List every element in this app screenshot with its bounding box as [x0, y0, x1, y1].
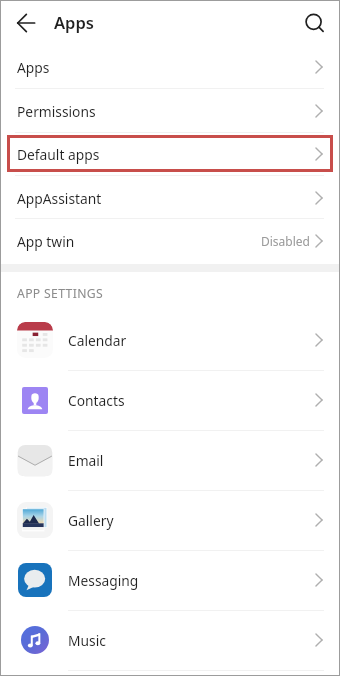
staticText: AppAssistant	[17, 189, 102, 208]
button[interactable]: Calendar	[0, 310, 340, 370]
staticText: APP SETTINGS	[17, 285, 104, 302]
staticText: Contacts	[68, 391, 125, 410]
staticText: Default apps	[17, 145, 100, 164]
button[interactable]: Apps	[0, 45, 340, 89]
button[interactable]: App twin	[0, 219, 340, 263]
staticText: Messaging	[68, 571, 139, 590]
button[interactable]: Permissions	[0, 89, 340, 133]
staticText: Calendar	[68, 331, 127, 350]
staticText: Email	[68, 451, 104, 470]
button[interactable]: Messaging	[0, 550, 340, 610]
staticText: Disabled	[261, 233, 310, 249]
button[interactable]: Contacts	[0, 370, 340, 430]
button[interactable]: Gallery	[0, 490, 340, 550]
staticText: Apps	[17, 58, 50, 77]
button[interactable]: Default apps	[0, 132, 340, 176]
button[interactable]: Music	[0, 610, 340, 670]
staticText: Apps	[54, 11, 94, 33]
button[interactable]: Email	[0, 430, 340, 490]
button[interactable]: AppAssistant	[0, 176, 340, 220]
staticText: App twin	[17, 232, 75, 251]
staticText: Music	[68, 631, 106, 650]
staticText: Gallery	[68, 511, 114, 530]
button[interactable]: Search	[298, 7, 332, 41]
staticText: Permissions	[17, 102, 96, 121]
button[interactable]: Back	[9, 6, 43, 40]
